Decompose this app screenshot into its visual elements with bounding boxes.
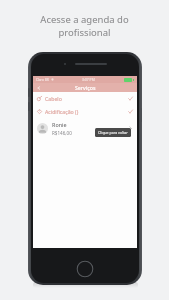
button[interactable]: Clique para voltar — [98, 130, 128, 135]
button[interactable]: Home — [76, 260, 94, 278]
button[interactable]: Cabelo — [33, 92, 137, 105]
staticText: Serviços — [75, 84, 96, 91]
staticText: Claro BR — [36, 78, 49, 82]
button[interactable]: Ronie — [33, 118, 137, 138]
button[interactable]: Back — [35, 84, 43, 92]
staticText: Ronie — [52, 121, 67, 128]
staticText: Clique para voltar — [98, 130, 128, 135]
staticText: Acesse a agenda do profissional — [22, 13, 147, 39]
staticText: Acidificação () — [45, 108, 79, 115]
staticText: Cabelo — [45, 95, 62, 102]
button[interactable]: Acidificação () — [33, 105, 137, 118]
staticText: R$146,00 — [52, 130, 72, 136]
staticText: 3:07 PM — [82, 77, 95, 82]
